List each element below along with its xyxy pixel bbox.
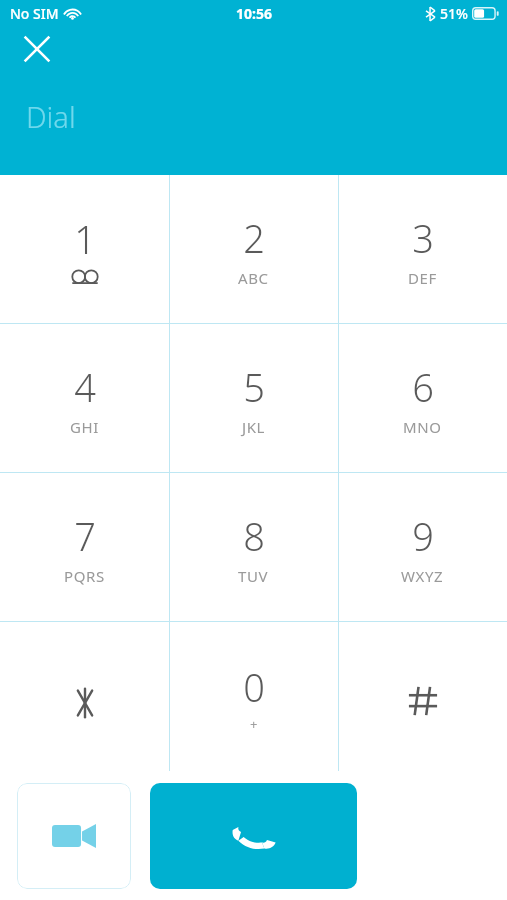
staticText: 9	[412, 510, 434, 562]
staticText: 0	[243, 661, 265, 713]
staticText: WXYZ	[401, 566, 444, 586]
staticText: JKL	[242, 417, 266, 437]
button[interactable]: 1	[0, 175, 169, 324]
staticText: 4	[74, 361, 96, 413]
staticText: 51%	[440, 4, 468, 23]
staticText: 8	[243, 510, 265, 562]
staticText: MNO	[403, 417, 442, 437]
button[interactable]: 7	[0, 473, 169, 622]
button[interactable]: 0	[169, 622, 338, 771]
button[interactable]: 3	[338, 175, 507, 324]
button[interactable]: 6	[338, 324, 507, 473]
button[interactable]: Call	[150, 783, 357, 889]
staticText: Dial	[26, 97, 76, 136]
staticText: DEF	[408, 268, 437, 288]
staticText: 5	[243, 361, 265, 413]
button[interactable]: Video call	[17, 783, 131, 889]
button[interactable]: 5	[169, 324, 338, 473]
staticText: TUV	[238, 566, 269, 586]
button[interactable]: 2	[169, 175, 338, 324]
staticText: No SIM	[10, 4, 59, 23]
staticText: GHI	[70, 417, 99, 437]
staticText: PQRS	[64, 566, 105, 586]
button[interactable]: 9	[338, 473, 507, 622]
button[interactable]: 8	[169, 473, 338, 622]
staticText: 3	[412, 212, 434, 264]
staticText: 6	[412, 361, 434, 413]
staticText: 7	[74, 510, 96, 562]
button[interactable]	[0, 622, 169, 771]
staticText: 2	[243, 212, 265, 264]
button[interactable]: Close	[14, 26, 60, 72]
staticText: ABC	[238, 268, 269, 288]
button[interactable]: 4	[0, 324, 169, 473]
staticText: +	[250, 715, 259, 733]
staticText: 10:56	[236, 4, 272, 23]
button[interactable]	[338, 622, 507, 771]
staticText: 1	[74, 213, 96, 265]
